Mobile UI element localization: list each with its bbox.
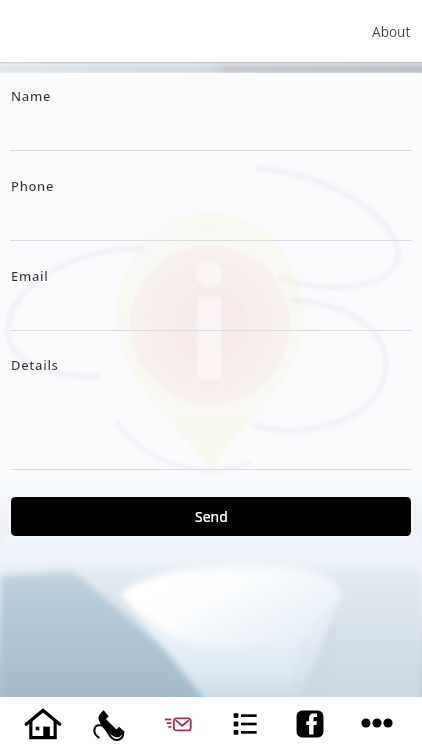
staticText: About	[372, 23, 411, 41]
staticText: Details	[11, 356, 59, 374]
button[interactable]: List	[226, 705, 264, 743]
button[interactable]: Send	[11, 497, 411, 536]
button[interactable]: Facebook	[291, 705, 329, 743]
button[interactable]: Email	[160, 705, 198, 743]
staticText: Phone	[11, 177, 55, 195]
staticText: Email	[11, 267, 49, 285]
staticText: Send	[195, 507, 228, 526]
button[interactable]: About	[368, 16, 415, 48]
button[interactable]: Home	[24, 705, 62, 743]
button[interactable]: Call	[92, 705, 130, 743]
staticText: Name	[11, 87, 52, 105]
button[interactable]: More	[358, 705, 396, 743]
